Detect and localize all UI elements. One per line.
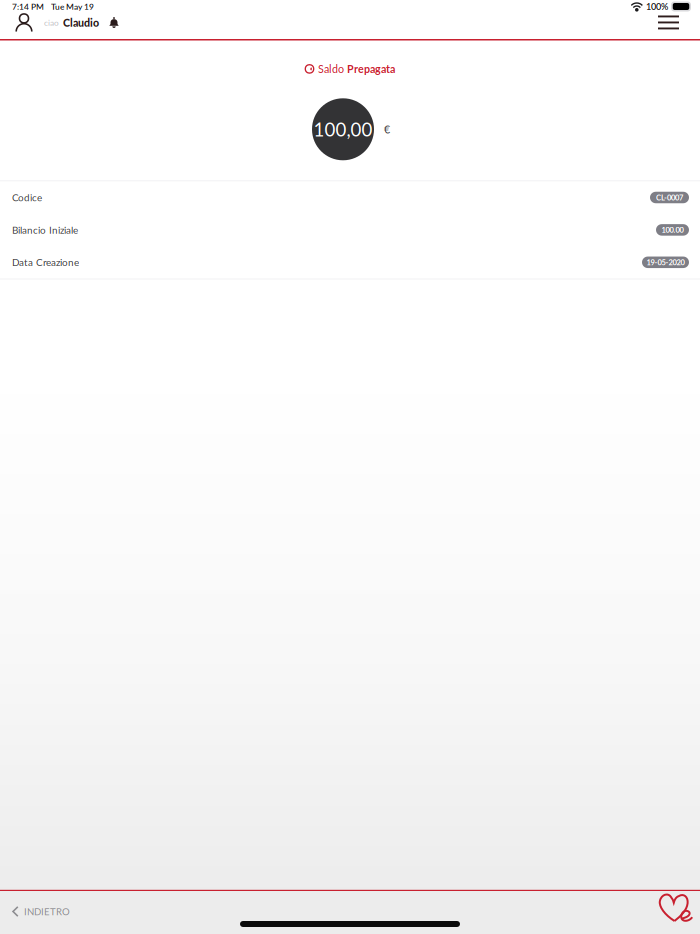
button[interactable]: Profile [15, 13, 33, 32]
staticText: 100% [646, 1, 668, 12]
staticText: Claudio [63, 16, 99, 29]
staticText: Codice [12, 192, 42, 203]
button[interactable]: INDIETRO [0, 891, 80, 921]
staticText: 100.00 [661, 225, 683, 234]
button[interactable]: Bilancio Iniziale [0, 214, 700, 246]
button[interactable]: Data Creazione [0, 246, 700, 278]
staticText: Saldo [318, 62, 344, 75]
staticText: 7:14 PM [12, 1, 44, 12]
staticText: 100,00 [313, 118, 372, 140]
staticText: 19-05-2020 [646, 258, 684, 267]
staticText: Data Creazione [12, 256, 79, 268]
staticText: Tue May 19 [51, 1, 94, 12]
button[interactable]: Menu [658, 15, 679, 29]
staticText: ciao [44, 17, 59, 27]
staticText: € [384, 123, 390, 136]
staticText: Bilancio Iniziale [12, 224, 78, 236]
staticText: Prepagata [347, 62, 395, 75]
button[interactable]: Notifications [109, 17, 119, 28]
staticText: INDIETRO [24, 906, 70, 917]
staticText: CL-0007 [656, 193, 683, 202]
button[interactable]: Codice [0, 181, 700, 214]
